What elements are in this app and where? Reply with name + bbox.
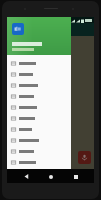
- button[interactable]: Recent apps: [70, 171, 81, 182]
- button[interactable]: [7, 135, 71, 146]
- button[interactable]: [7, 80, 71, 91]
- button[interactable]: Back: [21, 171, 32, 182]
- button[interactable]: Home: [45, 171, 56, 182]
- button[interactable]: [7, 17, 71, 55]
- button[interactable]: [7, 69, 71, 80]
- button[interactable]: [7, 58, 71, 69]
- button[interactable]: [7, 102, 71, 113]
- button[interactable]: [7, 157, 71, 168]
- button[interactable]: [7, 113, 71, 124]
- button[interactable]: Record audio: [78, 151, 91, 164]
- button[interactable]: [7, 124, 71, 135]
- button[interactable]: [7, 146, 71, 157]
- button[interactable]: [7, 91, 71, 102]
